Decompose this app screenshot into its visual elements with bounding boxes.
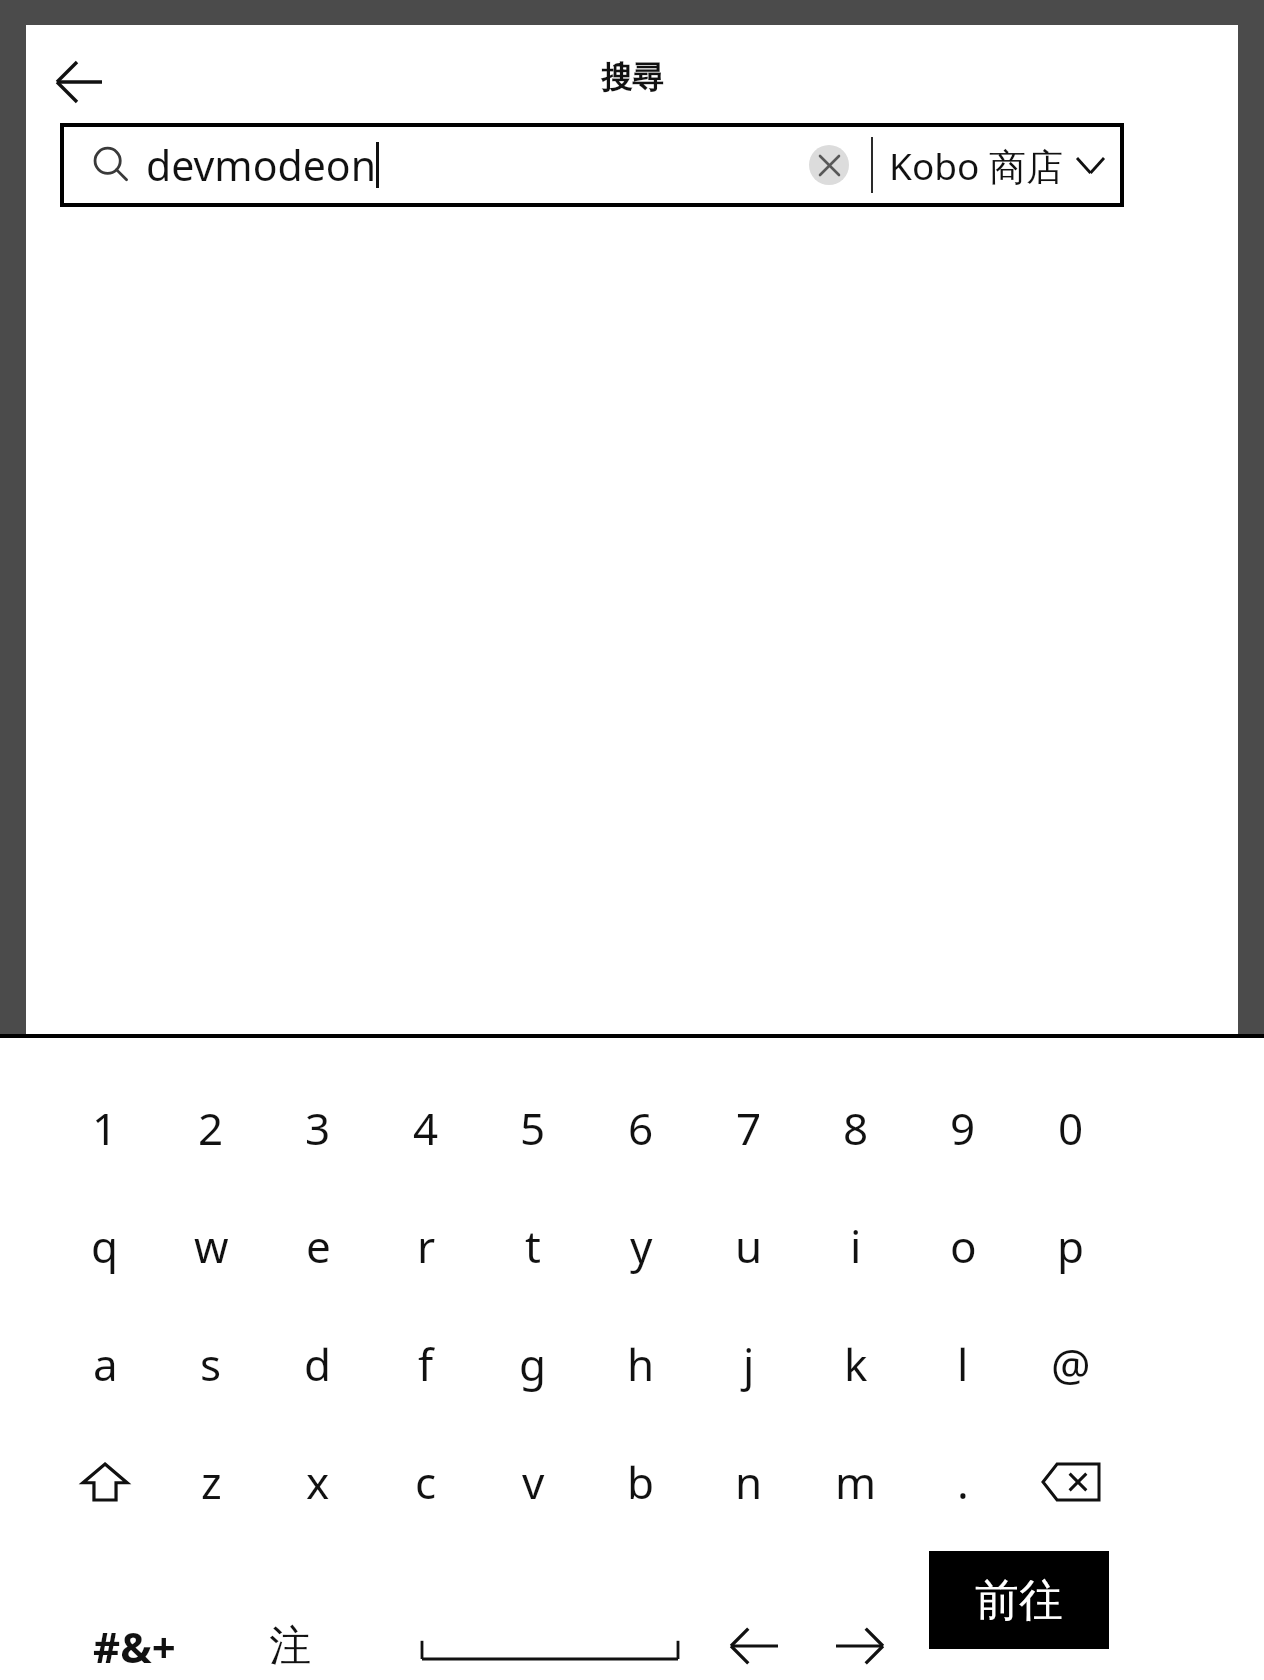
staticText: 0	[1058, 1098, 1084, 1158]
button[interactable]: Back	[34, 45, 124, 119]
staticText: 9	[950, 1098, 976, 1158]
button[interactable]: 注	[240, 1600, 340, 1680]
staticText: y	[630, 1216, 653, 1276]
button[interactable]: 1	[55, 1082, 155, 1174]
staticText: z	[201, 1452, 222, 1512]
button[interactable]: i	[806, 1200, 906, 1292]
button[interactable]: s	[161, 1318, 261, 1410]
staticText: #&+	[93, 1618, 176, 1675]
staticText: s	[200, 1334, 222, 1394]
staticText: 2	[198, 1098, 224, 1158]
button[interactable]: Space	[400, 1600, 700, 1680]
button[interactable]: v	[483, 1436, 583, 1528]
button[interactable]: Backspace	[1024, 1442, 1118, 1522]
staticText: 3	[305, 1098, 331, 1158]
staticText: 4	[413, 1098, 439, 1158]
staticText: g	[519, 1334, 547, 1394]
button[interactable]: u	[699, 1200, 799, 1292]
button[interactable]: .	[913, 1436, 1013, 1528]
button[interactable]: q	[55, 1200, 155, 1292]
button[interactable]: l	[913, 1318, 1013, 1410]
staticText: j	[743, 1334, 755, 1394]
button[interactable]: 3	[268, 1082, 368, 1174]
staticText: v	[522, 1452, 545, 1512]
staticText: o	[950, 1216, 977, 1276]
button[interactable]: p	[1021, 1200, 1121, 1292]
button[interactable]: Shift	[58, 1442, 152, 1522]
staticText: f	[418, 1334, 434, 1394]
button[interactable]: e	[268, 1200, 368, 1292]
button[interactable]: 4	[376, 1082, 476, 1174]
button[interactable]: 2	[161, 1082, 261, 1174]
button[interactable]: n	[699, 1436, 799, 1528]
staticText: q	[91, 1216, 119, 1276]
button[interactable]: m	[806, 1436, 906, 1528]
button[interactable]: c	[376, 1436, 476, 1528]
staticText: Kobo 商店	[889, 140, 1064, 191]
staticText: m	[835, 1452, 877, 1512]
button[interactable]: a	[55, 1318, 155, 1410]
staticText: devmodeon	[146, 137, 376, 193]
button[interactable]: y	[591, 1200, 691, 1292]
button[interactable]: @	[1021, 1318, 1121, 1410]
button[interactable]: b	[591, 1436, 691, 1528]
staticText: a	[93, 1334, 118, 1394]
button[interactable]: 9	[913, 1082, 1013, 1174]
staticText: 注	[269, 1620, 311, 1673]
button[interactable]: f	[376, 1318, 476, 1410]
staticText: d	[304, 1334, 332, 1394]
button[interactable]: 5	[483, 1082, 583, 1174]
button[interactable]: 0	[1021, 1082, 1121, 1174]
staticText: 6	[628, 1098, 654, 1158]
button[interactable]: Clear search	[809, 145, 849, 185]
staticText: 1	[92, 1098, 118, 1158]
button[interactable]: h	[591, 1318, 691, 1410]
staticText: .	[957, 1452, 969, 1512]
staticText: c	[415, 1452, 437, 1512]
button[interactable]: 8	[806, 1082, 906, 1174]
staticText: k	[844, 1334, 868, 1394]
button[interactable]: 7	[699, 1082, 799, 1174]
staticText: i	[850, 1216, 862, 1276]
staticText: 8	[843, 1098, 869, 1158]
staticText: t	[525, 1216, 541, 1276]
staticText: b	[627, 1452, 655, 1512]
button[interactable]: g	[483, 1318, 583, 1410]
button[interactable]: d	[268, 1318, 368, 1410]
staticText: r	[417, 1216, 436, 1276]
button[interactable]: k	[806, 1318, 906, 1410]
button[interactable]: r	[376, 1200, 476, 1292]
button[interactable]: z	[161, 1436, 261, 1528]
staticText: 搜尋	[601, 58, 663, 97]
button[interactable]: j	[699, 1318, 799, 1410]
staticText: h	[627, 1334, 655, 1394]
staticText: 前往	[975, 1573, 1063, 1628]
button[interactable]: #&+	[80, 1600, 188, 1680]
staticText: p	[1057, 1216, 1085, 1276]
staticText: l	[957, 1334, 969, 1394]
button[interactable]: Cursor right	[812, 1600, 908, 1680]
staticText: e	[306, 1216, 331, 1276]
staticText: @	[1051, 1334, 1091, 1394]
staticText: n	[735, 1452, 763, 1512]
button[interactable]: o	[913, 1200, 1013, 1292]
button[interactable]: 6	[591, 1082, 691, 1174]
staticText: w	[194, 1216, 229, 1276]
button[interactable]: Cursor left	[706, 1600, 802, 1680]
button[interactable]: 前往	[929, 1551, 1109, 1649]
button[interactable]: Kobo 商店	[889, 130, 1104, 201]
button[interactable]: w	[161, 1200, 261, 1292]
staticText: x	[306, 1452, 330, 1512]
staticText: 7	[736, 1098, 762, 1158]
staticText: u	[735, 1216, 763, 1276]
button[interactable]: t	[483, 1200, 583, 1292]
staticText: 5	[520, 1098, 546, 1158]
button[interactable]: x	[268, 1436, 368, 1528]
